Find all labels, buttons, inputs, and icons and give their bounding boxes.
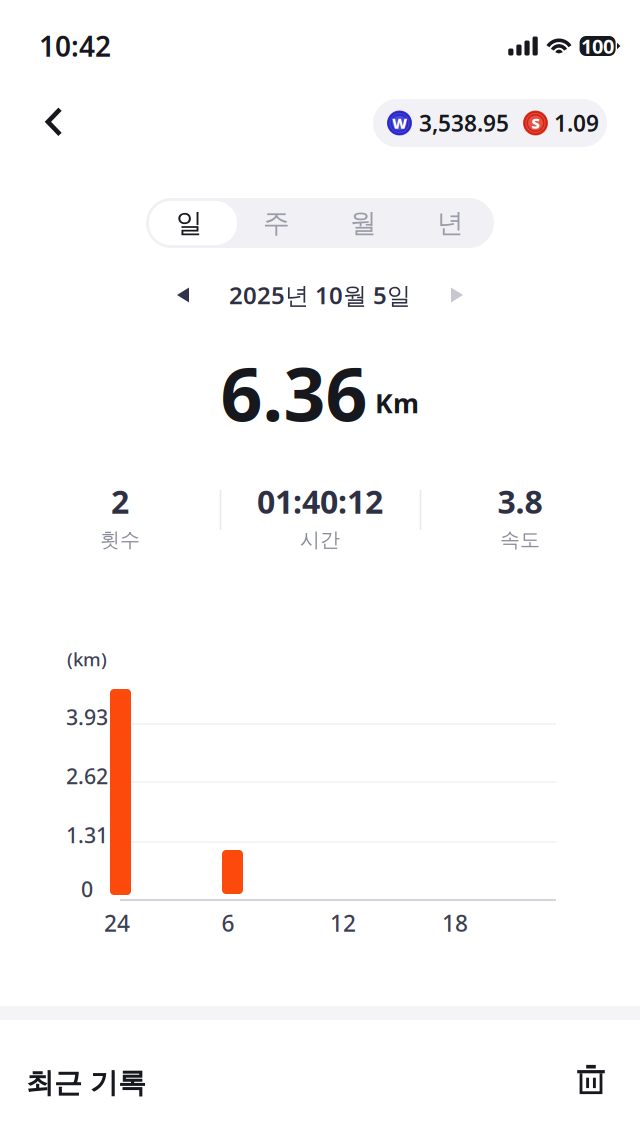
staticText: (km)	[67, 647, 107, 671]
staticText: 1.09	[554, 108, 599, 138]
staticText: 월	[350, 207, 377, 239]
staticText: 0	[81, 875, 93, 903]
button[interactable]: 일	[146, 198, 233, 248]
staticText: 10:42	[39, 27, 111, 65]
staticText: 6	[221, 908, 234, 938]
staticText: 3.8	[497, 480, 542, 522]
button[interactable]: 년	[407, 198, 494, 248]
staticText: 3.93	[66, 703, 108, 731]
staticText: 18	[442, 908, 468, 938]
button[interactable]: Next day	[434, 273, 480, 317]
staticText: 최근 기록	[26, 1066, 146, 1100]
staticText: W	[392, 113, 407, 133]
staticText: 6.36	[220, 344, 367, 442]
staticText: S	[531, 113, 539, 133]
staticText: 100	[581, 33, 614, 59]
staticText: 속도	[500, 527, 540, 552]
staticText: 일	[176, 207, 203, 239]
staticText: 2.62	[66, 762, 108, 790]
staticText: 1.31	[66, 821, 108, 849]
staticText: 24	[104, 908, 130, 938]
staticText: 횟수	[100, 527, 140, 552]
staticText: 2025년 10월 5일	[229, 279, 411, 311]
staticText: 주	[263, 207, 290, 239]
button[interactable]: W	[373, 99, 607, 147]
staticText: 시간	[300, 527, 340, 552]
button[interactable]: Delete records	[566, 1055, 616, 1105]
staticText: 2	[111, 480, 129, 522]
staticText: 12	[330, 908, 356, 938]
button[interactable]: 월	[320, 198, 407, 248]
staticText: 년	[437, 207, 464, 239]
staticText: Km	[375, 385, 419, 421]
staticText: 3,538.95	[419, 108, 509, 138]
button[interactable]: Previous day	[160, 273, 206, 317]
button[interactable]: 주	[233, 198, 320, 248]
staticText: 01:40:12	[257, 480, 383, 522]
button[interactable]: Back	[26, 93, 82, 151]
